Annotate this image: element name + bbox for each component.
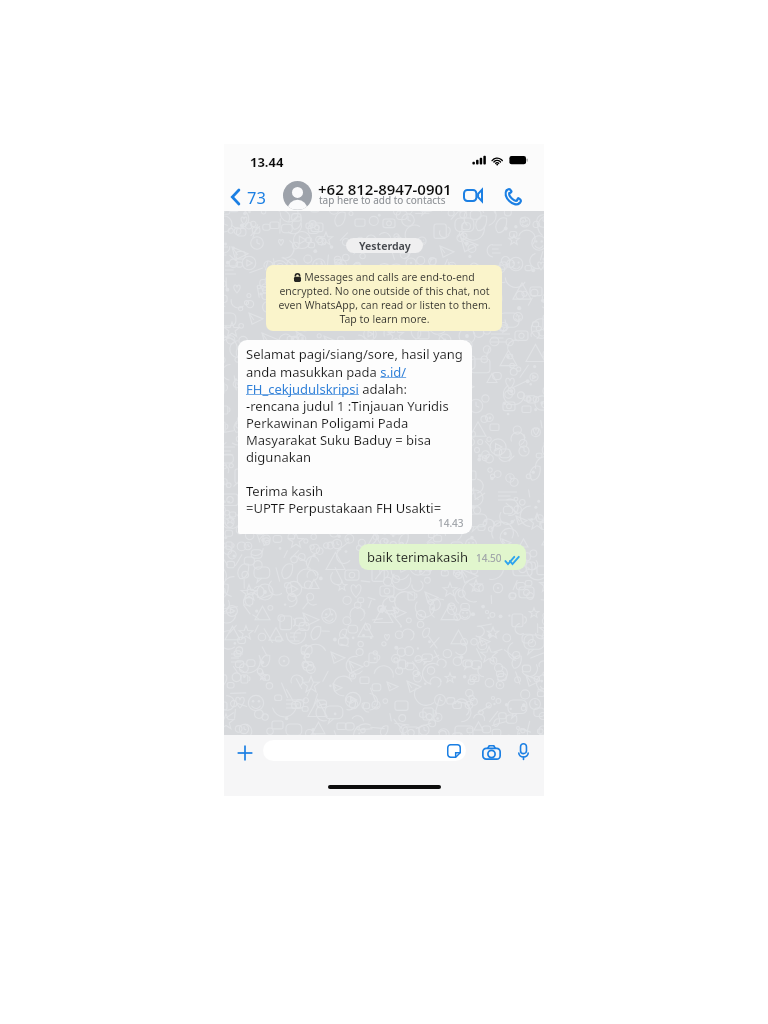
button[interactable]: Attach [232,740,257,765]
other: Stickers [447,744,461,758]
staticText: Selamat pagi/siang/sore, hasil yang anda… [246,345,463,517]
staticText: encrypted. No one outside of this chat, … [279,284,490,298]
staticText: even WhatsApp, can read or listen to the… [278,298,491,312]
button[interactable]: Voice call [499,184,525,206]
staticText: +62 812-8947-0901 [318,179,452,199]
button[interactable]: Camera [479,740,503,764]
staticText: 14.50 [476,551,502,565]
button[interactable]: Video call [460,185,486,205]
staticText: Tap to learn more. [339,312,430,326]
button[interactable]: Stickers [263,740,466,761]
staticText: Yesterday [359,239,411,253]
staticText: Messages and calls are end-to-end [304,270,475,284]
staticText: 14.43 [438,516,464,530]
button[interactable]: Selamat pagi/siang/sore, hasil yang anda… [238,340,472,534]
button[interactable]: baik terimakasih [359,544,526,570]
button[interactable]: Back to 73 chats [229,185,268,209]
staticText: 13.44 [250,153,284,171]
button[interactable]: Voice message [511,739,535,763]
staticText: baik terimakasih [367,548,469,566]
button[interactable]: Messages and calls are end-to-end [266,265,502,331]
staticText: 73 [247,186,266,208]
button[interactable]: Yesterday [346,238,423,253]
staticText: tap here to add to contacts [319,193,446,207]
